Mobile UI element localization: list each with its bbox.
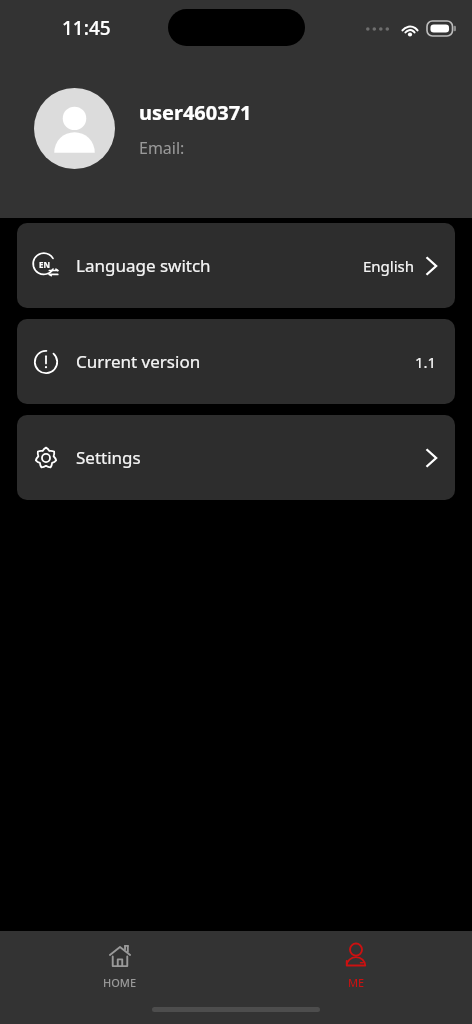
staticText: HOME: [103, 975, 137, 990]
button[interactable]: user460371: [34, 88, 472, 169]
staticText: EN: [36, 259, 53, 270]
staticText: user460371: [139, 99, 252, 126]
staticText: Current version: [76, 350, 201, 373]
staticText: Email:: [139, 137, 185, 159]
staticText: 11:45: [62, 15, 111, 41]
staticText: English: [363, 256, 415, 276]
staticText: Language switch: [76, 254, 211, 277]
button[interactable]: Current version: [17, 319, 455, 404]
button[interactable]: EN: [17, 223, 455, 308]
staticText: 1.1: [415, 352, 437, 372]
button[interactable]: HOME: [84, 931, 156, 990]
staticText: ME: [348, 975, 365, 990]
button[interactable]: Settings: [17, 415, 455, 500]
button[interactable]: ME: [320, 931, 392, 990]
staticText: Settings: [76, 446, 141, 469]
